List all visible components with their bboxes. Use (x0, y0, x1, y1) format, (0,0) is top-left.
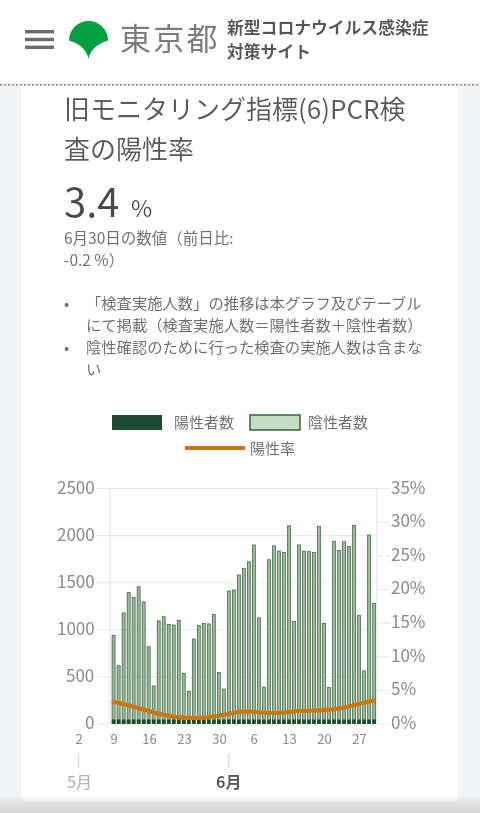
staticText: 15% (391, 608, 426, 633)
staticText: 6月30日の数値（前日比: -0.2 %） (64, 226, 234, 271)
staticText: 陰性者数 (308, 411, 369, 433)
staticText: 0 (85, 709, 95, 734)
staticText: 30% (391, 507, 426, 532)
button[interactable]: Menu (16, 19, 63, 59)
staticText: • (64, 291, 70, 313)
staticText: 東京都 (120, 14, 220, 59)
staticText: 陽性率 (250, 437, 296, 459)
staticText: 16 (142, 729, 157, 748)
staticText: 3.4 (64, 171, 120, 229)
staticText: 5月 (67, 769, 92, 792)
staticText: 新型コロナウイルス感染症 (227, 15, 429, 39)
staticText: 6月 (216, 769, 242, 792)
staticText: 陰性確認のために行った検査の実施人数は含まな い (86, 335, 423, 379)
staticText: • (64, 335, 70, 357)
staticText: 2 (75, 729, 83, 748)
staticText: 9 (110, 729, 118, 748)
staticText: 0% (391, 709, 417, 734)
staticText: 旧モニタリング指標(6)PCR検 査の陽性率 (64, 89, 406, 167)
staticText: 対策サイト (227, 39, 311, 63)
staticText: 2000 (57, 521, 95, 546)
staticText: 25% (391, 541, 426, 566)
staticText: 35% (391, 474, 426, 499)
staticText: 5% (391, 675, 417, 700)
staticText: 20 (317, 729, 332, 748)
staticText: 13 (282, 729, 297, 748)
staticText: 1500 (57, 568, 95, 593)
staticText: 10% (391, 642, 426, 667)
staticText: 27 (352, 729, 367, 748)
staticText: 2500 (57, 474, 95, 499)
staticText: 20% (391, 574, 426, 599)
staticText: 6 (250, 729, 258, 748)
staticText: 23 (177, 729, 192, 748)
staticText: 「検査実施人数」の推移は本グラフ及びテーブル にて掲載（検査実施人数＝陽性者数＋… (86, 291, 423, 335)
staticText: 陽性者数 (174, 411, 235, 433)
staticText: 30 (212, 729, 227, 748)
staticText: 1000 (57, 615, 95, 640)
staticText: 500 (66, 662, 95, 687)
staticText: % (131, 190, 153, 223)
